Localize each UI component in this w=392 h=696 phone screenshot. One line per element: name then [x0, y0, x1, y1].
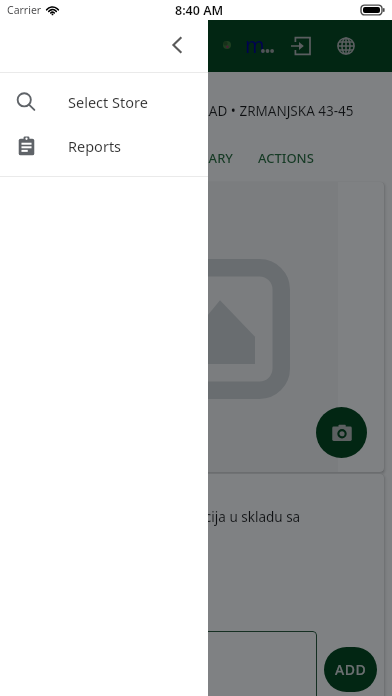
button[interactable]: Change language	[324, 24, 368, 68]
staticText: m	[245, 31, 265, 60]
staticText: SUMMARY	[168, 149, 233, 167]
button[interactable]: Sign in	[279, 24, 323, 68]
button[interactable]: ACTIONS	[243, 138, 328, 178]
staticText: Select Store	[68, 92, 148, 112]
button[interactable]: ADD	[324, 647, 377, 692]
staticText: Proveriti da li je cela ekspozicija u sk…	[24, 508, 301, 526]
staticText: ADD	[335, 660, 367, 679]
button[interactable]: SUMMARY	[158, 138, 243, 178]
staticText: 8:40 AM	[175, 2, 224, 19]
button[interactable]: Select Store	[0, 80, 208, 124]
button[interactable]: Reports	[0, 124, 208, 168]
staticText: Carrier	[7, 3, 42, 17]
button[interactable]: Close navigation drawer	[157, 25, 197, 65]
staticText: Reports	[68, 136, 122, 156]
button[interactable]: Take photo	[316, 407, 367, 458]
staticText: ACTIONS	[258, 149, 314, 167]
staticText: PJ MAXI 245531, 11000 BEOGRAD • ZRMANJSK…	[16, 102, 354, 120]
